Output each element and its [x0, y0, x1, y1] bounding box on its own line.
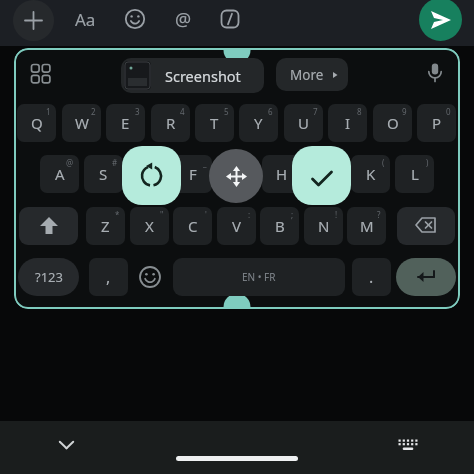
button[interactable]: B [260, 207, 299, 245]
button[interactable]: V [217, 207, 256, 245]
button[interactable]: Aa [68, 2, 102, 36]
staticText: 3 [135, 106, 140, 117]
staticText: Q [31, 113, 43, 133]
staticText: P [432, 113, 442, 133]
button[interactable]: N [304, 207, 343, 245]
button[interactable] [48, 430, 85, 460]
button[interactable]: J [306, 155, 345, 193]
staticText: 0 [446, 106, 451, 117]
staticText: ! [335, 209, 338, 220]
button[interactable]: . [352, 258, 391, 296]
button[interactable]: I [328, 104, 367, 142]
staticText: F [189, 164, 197, 184]
button[interactable] [396, 258, 456, 296]
button[interactable]: F [173, 155, 212, 193]
button[interactable]: L [395, 155, 434, 193]
button[interactable] [209, 149, 263, 203]
staticText: EN • FR [242, 270, 276, 284]
staticText: M [360, 216, 374, 236]
staticText: Aa [75, 8, 96, 31]
staticText: 6 [268, 106, 273, 117]
button[interactable] [22, 55, 58, 91]
button[interactable]: More [276, 58, 348, 91]
staticText: More [290, 66, 324, 84]
button[interactable]: X [130, 207, 169, 245]
button[interactable] [389, 430, 426, 460]
staticText: . [369, 266, 374, 288]
staticText: U [298, 113, 309, 133]
button[interactable]: G [217, 155, 256, 193]
staticText: H [276, 164, 288, 184]
staticText: J [323, 164, 328, 184]
staticText: 7 [313, 106, 318, 117]
button[interactable]: W [62, 104, 101, 142]
button[interactable]: S [84, 155, 123, 193]
staticText: ?123 [35, 268, 63, 286]
staticText: L [411, 164, 419, 184]
button[interactable]: Q [17, 104, 56, 142]
staticText: D [142, 164, 153, 184]
staticText: 2 [91, 106, 96, 117]
button[interactable]: Screenshot [121, 58, 264, 93]
button[interactable]: A [40, 155, 79, 193]
staticText: - [293, 157, 296, 168]
staticText: R [166, 113, 176, 133]
staticText: 5 [224, 106, 229, 117]
button[interactable] [419, 0, 462, 41]
button[interactable] [292, 146, 351, 205]
staticText: $ [157, 157, 162, 168]
staticText: 8 [357, 106, 362, 117]
staticText: X [145, 216, 154, 236]
button[interactable]: @ [166, 2, 200, 36]
staticText: K [366, 164, 376, 184]
button[interactable]: , [89, 258, 128, 296]
button[interactable]: P [417, 104, 456, 142]
staticText: B [275, 216, 285, 236]
staticText: ? [377, 209, 381, 220]
staticText: @ [175, 7, 192, 32]
staticText: 4 [180, 106, 185, 117]
staticText: @ [66, 157, 74, 168]
button[interactable] [19, 207, 78, 245]
button[interactable]: R [151, 104, 190, 142]
staticText: V [232, 216, 242, 236]
staticText: 9 [402, 106, 407, 117]
staticText: S [99, 164, 108, 184]
button[interactable]: K [351, 155, 390, 193]
button[interactable]: D [128, 155, 167, 193]
button[interactable]: Z [86, 207, 125, 245]
staticText: A [55, 164, 65, 184]
button[interactable]: ?123 [18, 258, 79, 296]
button[interactable] [213, 2, 247, 36]
button[interactable] [397, 207, 455, 245]
staticText: : [248, 209, 251, 220]
staticText: ' [205, 209, 207, 220]
button[interactable] [13, 0, 54, 41]
button[interactable]: H [262, 155, 301, 193]
staticText: G [231, 164, 242, 184]
staticText: ) [426, 157, 429, 168]
staticText: " [160, 209, 164, 220]
button[interactable] [132, 258, 168, 296]
button[interactable] [122, 146, 181, 205]
staticText: # [112, 157, 118, 168]
button[interactable]: O [373, 104, 412, 142]
staticText: I [345, 113, 351, 133]
button[interactable]: Y [239, 104, 278, 142]
button[interactable]: M [347, 207, 386, 245]
staticText: C [188, 216, 198, 236]
staticText: E [121, 113, 130, 133]
button[interactable]: U [284, 104, 323, 142]
button[interactable]: C [173, 207, 212, 245]
button[interactable] [417, 55, 453, 91]
staticText: _ [203, 157, 207, 168]
button[interactable] [118, 2, 152, 36]
button[interactable]: T [195, 104, 234, 142]
button[interactable]: E [106, 104, 145, 142]
staticText: , [106, 266, 111, 288]
button[interactable]: EN • FR [173, 258, 345, 296]
staticText: Screenshot [165, 66, 241, 86]
staticText: Z [101, 216, 110, 236]
